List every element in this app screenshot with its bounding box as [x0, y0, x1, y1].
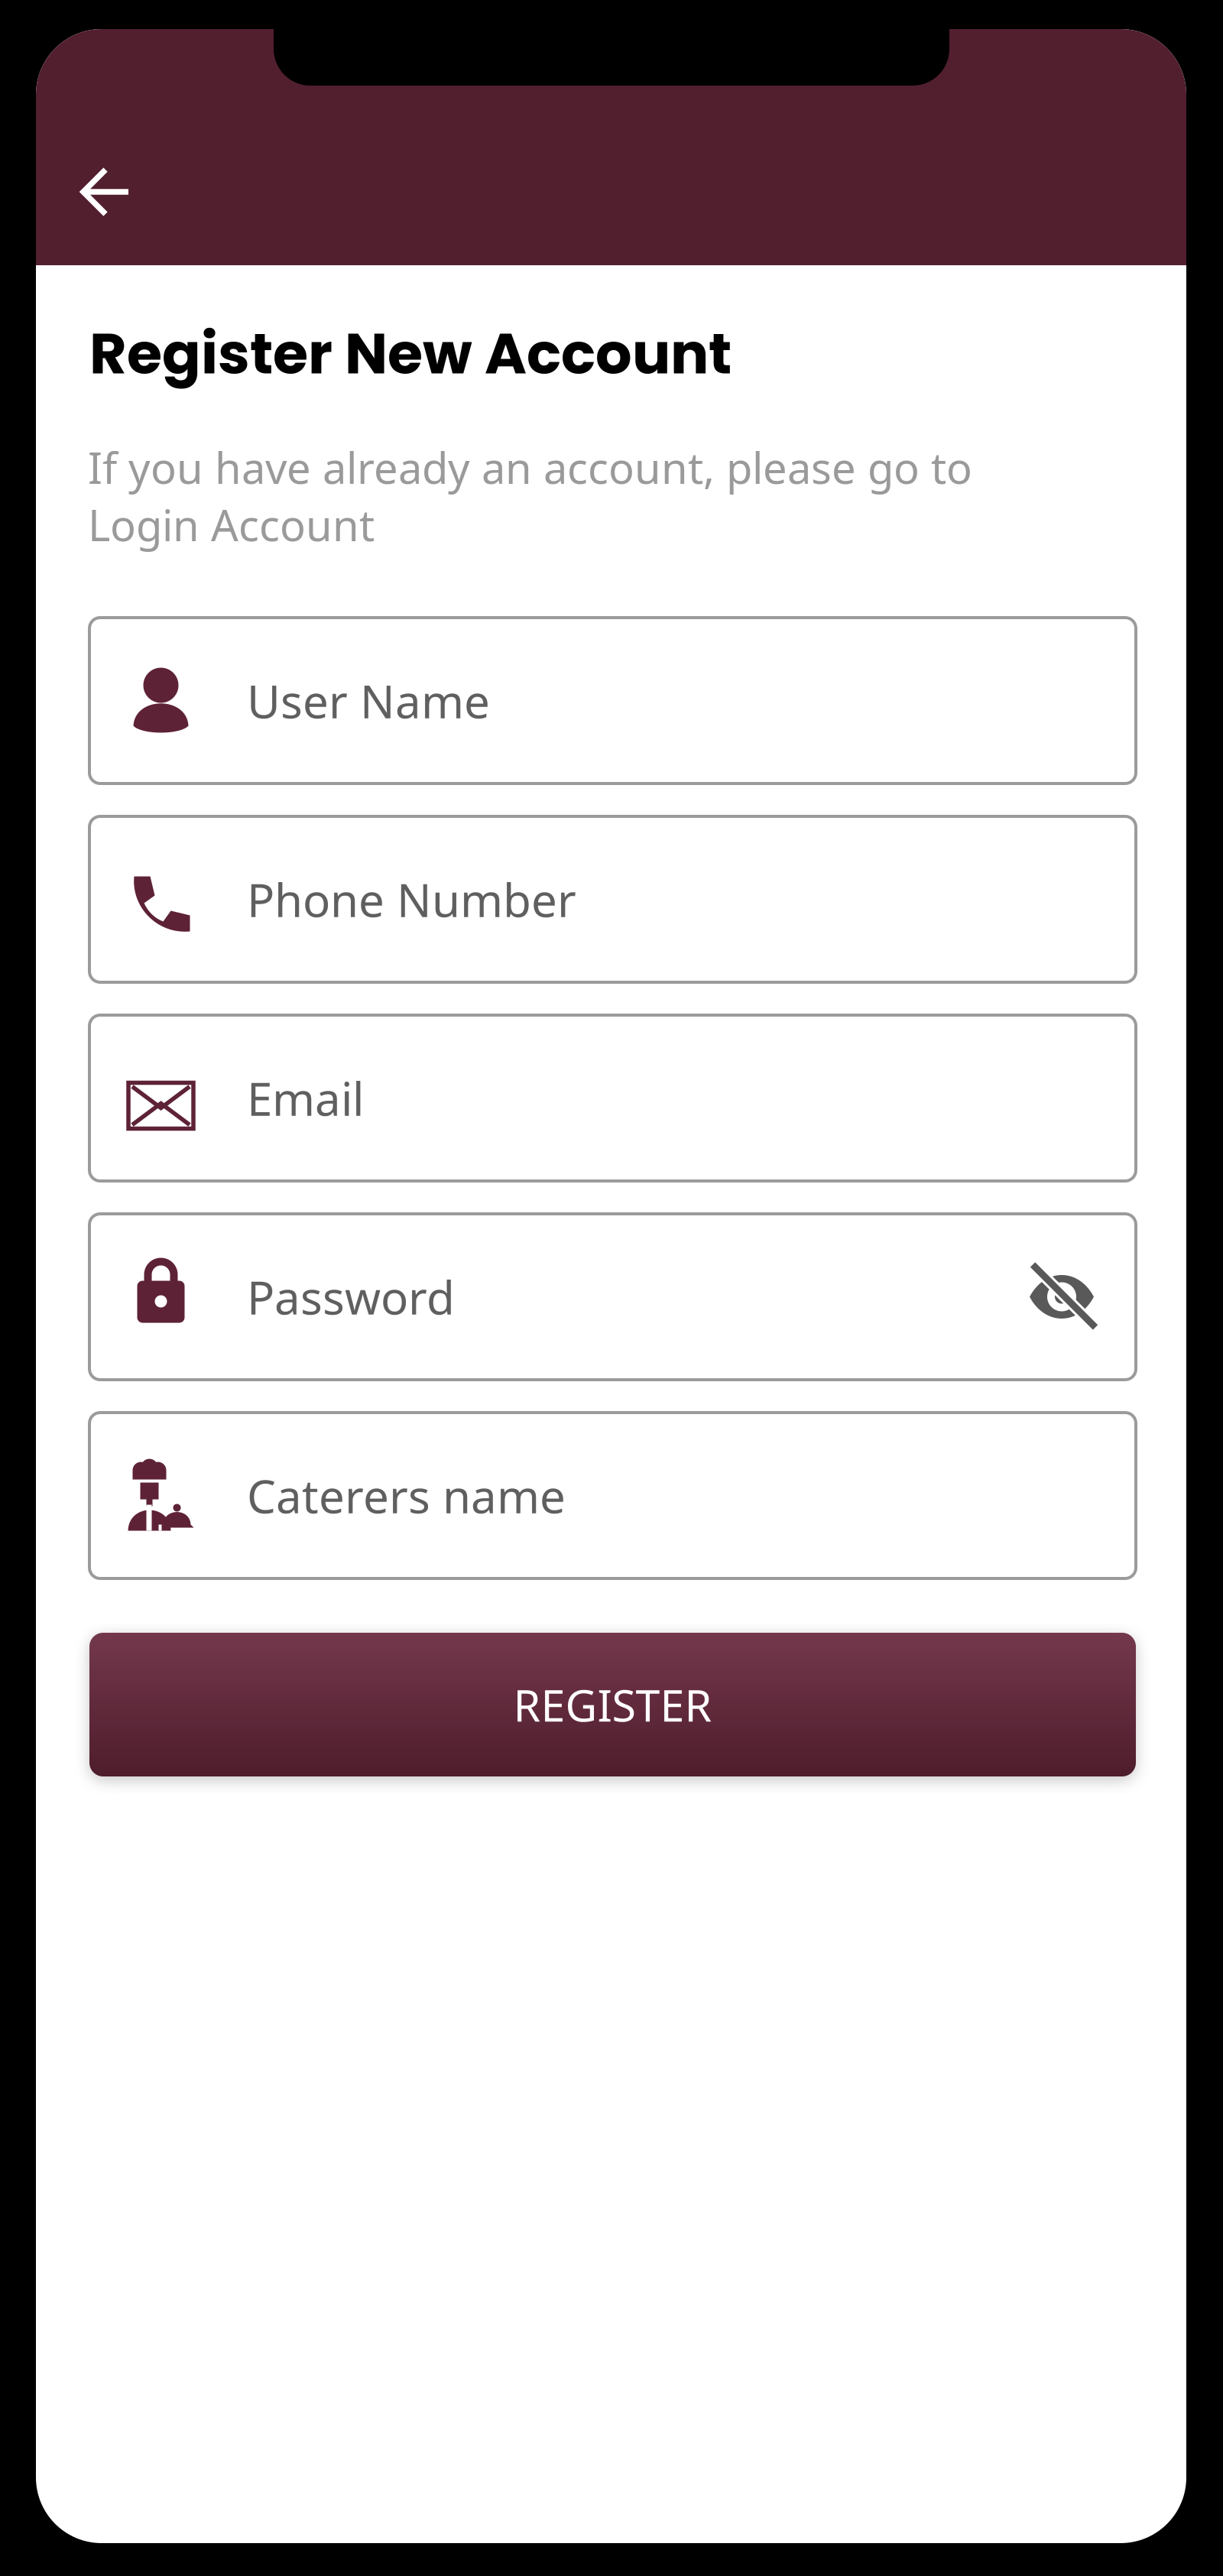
button[interactable]: Email — [89, 1015, 1136, 1181]
button[interactable]: REGISTER — [89, 1633, 1136, 1776]
button[interactable]: User Name — [89, 618, 1136, 784]
button[interactable]: Password — [89, 1214, 1136, 1380]
staticText: Login Account — [88, 496, 375, 553]
button[interactable]: Caterers name — [89, 1413, 1136, 1578]
staticText: Register New Account — [89, 313, 732, 393]
staticText: REGISTER — [513, 1675, 712, 1734]
staticText: If you have already an account, please g… — [88, 439, 972, 496]
staticText: User Name — [247, 670, 490, 731]
button[interactable]: Phone Number — [89, 816, 1136, 982]
staticText: Phone Number — [247, 869, 576, 930]
staticText: Email — [247, 1068, 364, 1129]
staticText: Password — [247, 1266, 455, 1327]
staticText: Caterers name — [247, 1465, 566, 1526]
button[interactable]: Back — [60, 146, 151, 238]
button[interactable]: Show password — [1004, 1214, 1119, 1380]
